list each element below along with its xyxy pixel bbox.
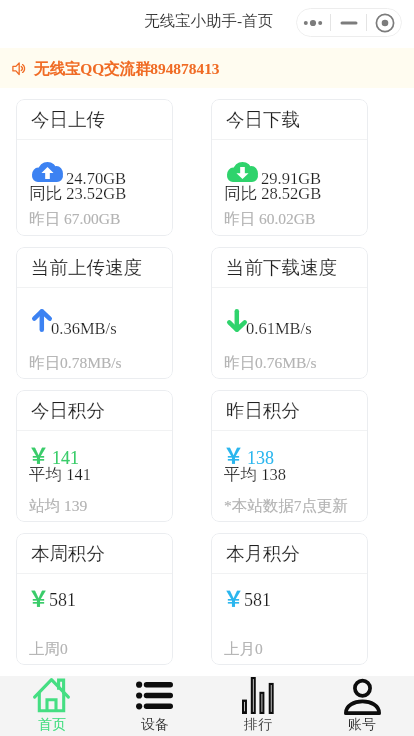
staticText: 排行 [244, 716, 272, 734]
button[interactable]: 今日积分 [16, 390, 173, 522]
button[interactable]: 今日上传 [16, 99, 173, 236]
button[interactable]: Close [367, 8, 402, 37]
staticText: 当前下载速度 [226, 256, 337, 279]
staticText: 581 [49, 590, 76, 610]
staticText: 138 [247, 448, 274, 468]
staticText: 同比 28.52GB [224, 183, 322, 204]
button[interactable]: 首页 [0, 676, 103, 736]
button[interactable]: 排行 [206, 676, 310, 736]
staticText: 昨日0.78MB/s [29, 353, 122, 373]
staticText: 本周积分 [31, 542, 105, 565]
button[interactable]: 昨日积分 [211, 390, 368, 522]
button[interactable]: 本月积分 [211, 533, 368, 665]
staticText: 当前上传速度 [31, 256, 142, 279]
button[interactable]: 本周积分 [16, 533, 173, 665]
staticText: 上月0 [224, 639, 263, 659]
staticText: 昨日 60.02GB [224, 209, 316, 229]
button[interactable]: More options [296, 8, 330, 37]
staticText: 平均 138 [224, 464, 286, 485]
staticText: 24.70GB [66, 169, 127, 187]
staticText: 今日积分 [31, 399, 105, 422]
staticText: 无线宝小助手-首页 [144, 11, 274, 31]
staticText: 昨日0.76MB/s [224, 353, 317, 373]
staticText: 581 [244, 590, 271, 610]
staticText: 同比 23.52GB [29, 183, 127, 204]
staticText: 本月积分 [226, 542, 300, 565]
button[interactable]: 当前上传速度 [16, 247, 173, 379]
staticText: ￥ [28, 439, 49, 469]
staticText: 昨日积分 [226, 399, 300, 422]
staticText: 昨日 67.00GB [29, 209, 121, 229]
staticText: 设备 [141, 716, 169, 734]
button[interactable]: 账号 [310, 676, 414, 736]
staticText: 今日上传 [31, 108, 105, 131]
staticText: ￥ [28, 582, 49, 612]
staticText: 站均 139 [29, 496, 88, 516]
button[interactable]: 无线宝QQ交流群894878413 [0, 48, 414, 88]
staticText: 29.91GB [261, 169, 322, 187]
staticText: ￥ [223, 439, 244, 469]
staticText: ￥ [223, 582, 244, 612]
staticText: 0.61MB/s [246, 319, 312, 337]
staticText: 141 [52, 448, 79, 468]
staticText: 上周0 [29, 639, 68, 659]
staticText: *本站数据7点更新 [224, 496, 348, 516]
button[interactable]: Minimize [331, 8, 366, 37]
staticText: 今日下载 [226, 108, 300, 131]
staticText: 首页 [38, 716, 66, 734]
button[interactable]: 设备 [103, 676, 206, 736]
staticText: 平均 141 [29, 464, 91, 485]
staticText: 账号 [348, 716, 376, 734]
button[interactable]: 当前下载速度 [211, 247, 368, 379]
staticText: 0.36MB/s [51, 319, 117, 337]
button[interactable]: 今日下载 [211, 99, 368, 236]
staticText: 无线宝QQ交流群894878413 [34, 59, 220, 78]
